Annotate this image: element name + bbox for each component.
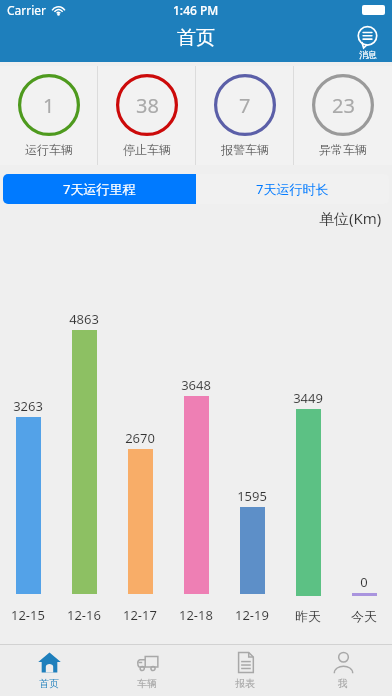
staticText: 12-19	[235, 606, 269, 624]
staticText: Carrier	[7, 2, 47, 18]
button[interactable]: 我	[294, 645, 392, 696]
button[interactable]: 1595	[224, 231, 280, 644]
staticText: 3449	[293, 389, 323, 407]
button[interactable]: 4863	[56, 231, 112, 644]
staticText: 1:46 PM	[173, 2, 219, 18]
staticText: 车辆	[137, 677, 157, 690]
button[interactable]: 3263	[0, 231, 56, 644]
staticText: 运行车辆	[25, 142, 73, 157]
button[interactable]: 7天运行时长	[196, 174, 389, 204]
staticText: 23	[332, 92, 355, 119]
staticText: 消息	[359, 49, 377, 60]
staticText: 12-16	[67, 606, 101, 624]
staticText: 异常车辆	[319, 142, 367, 157]
button[interactable]: 首页	[0, 645, 98, 696]
button[interactable]: 车辆	[98, 645, 196, 696]
staticText: 单位(Km)	[319, 208, 382, 228]
staticText: 停止车辆	[123, 142, 171, 157]
button[interactable]: 3648	[168, 231, 224, 644]
staticText: 12-15	[11, 606, 45, 624]
staticText: 38	[136, 92, 159, 119]
button[interactable]: 2670	[112, 231, 168, 644]
staticText: 1	[43, 92, 55, 119]
staticText: 12-17	[123, 606, 157, 624]
staticText: 3263	[13, 397, 43, 415]
staticText: 1595	[237, 487, 267, 505]
staticText: 我	[338, 677, 348, 690]
staticText: 报警车辆	[221, 142, 269, 157]
staticText: 3648	[181, 376, 211, 394]
staticText: 12-18	[179, 606, 213, 624]
button[interactable]: 3449	[280, 231, 336, 644]
staticText: 4863	[69, 310, 99, 328]
button[interactable]: 报表	[196, 645, 294, 696]
staticText: 首页	[39, 677, 59, 690]
button[interactable]: 7	[196, 66, 294, 165]
staticText: 昨天	[295, 608, 321, 624]
staticText: 0	[360, 573, 368, 591]
button[interactable]: 38	[98, 66, 196, 165]
staticText: 报表	[235, 677, 255, 690]
button[interactable]: 1	[0, 66, 98, 165]
button[interactable]: 23	[294, 66, 392, 165]
button[interactable]: 7天运行里程	[3, 174, 196, 204]
staticText: 首页	[177, 26, 215, 50]
staticText: 7天运行里程	[63, 180, 136, 198]
staticText: 2670	[125, 429, 155, 447]
staticText: 7	[239, 92, 251, 119]
button[interactable]: 消息 Messages	[357, 27, 378, 60]
staticText: 7天运行时长	[256, 180, 329, 198]
staticText: 今天	[351, 608, 377, 624]
button[interactable]: 0	[336, 231, 392, 644]
